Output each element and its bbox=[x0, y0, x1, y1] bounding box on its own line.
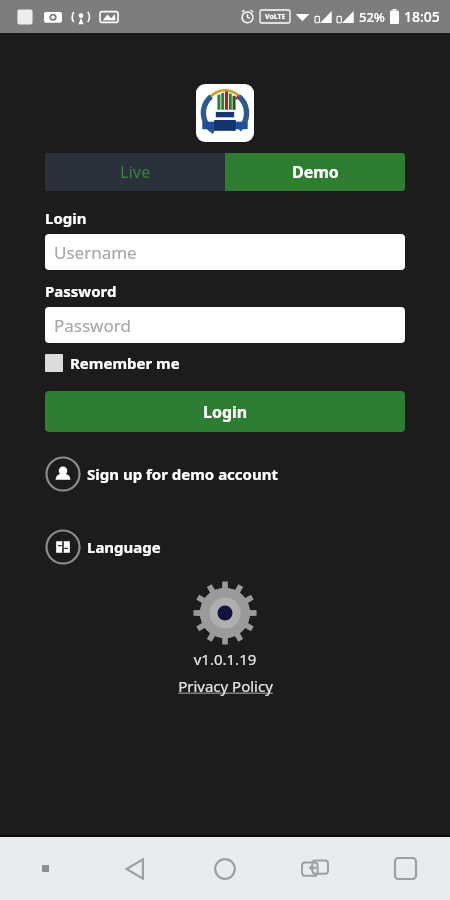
staticText: Password bbox=[54, 314, 131, 337]
button[interactable]: Switch apps bbox=[270, 837, 360, 900]
button[interactable]: Home bbox=[180, 837, 270, 900]
staticText: v1.0.1.19 bbox=[0, 649, 450, 669]
button[interactable]: Recent apps bbox=[360, 837, 450, 900]
staticText: VoLTE bbox=[265, 12, 286, 22]
button[interactable]: Back bbox=[90, 837, 180, 900]
staticText: 52% bbox=[359, 8, 385, 26]
button[interactable]: Privacy Policy bbox=[178, 676, 273, 696]
button[interactable]: Live bbox=[45, 153, 225, 191]
staticText: Login bbox=[203, 401, 248, 423]
button[interactable]: Language bbox=[45, 529, 161, 565]
staticText: Live bbox=[120, 161, 151, 183]
staticText: 18:05 bbox=[404, 7, 440, 26]
button[interactable]: Demo bbox=[225, 153, 405, 191]
staticText: Remember me bbox=[70, 353, 180, 373]
button[interactable]: Menu bbox=[0, 837, 90, 900]
button[interactable]: Password bbox=[45, 307, 405, 343]
staticText: Demo bbox=[292, 161, 339, 183]
staticText: Password bbox=[45, 281, 117, 301]
button[interactable]: Sign up for demo account bbox=[45, 456, 278, 492]
staticText: Login bbox=[45, 208, 87, 228]
button[interactable] bbox=[196, 84, 254, 142]
button[interactable]: Remember me bbox=[45, 353, 180, 373]
staticText: Language bbox=[87, 537, 161, 557]
button[interactable]: Username bbox=[45, 234, 405, 270]
staticText: Sign up for demo account bbox=[87, 464, 278, 484]
staticText: Username bbox=[54, 241, 137, 264]
button[interactable]: Login bbox=[45, 391, 405, 432]
button[interactable]: Settings bbox=[192, 580, 258, 646]
